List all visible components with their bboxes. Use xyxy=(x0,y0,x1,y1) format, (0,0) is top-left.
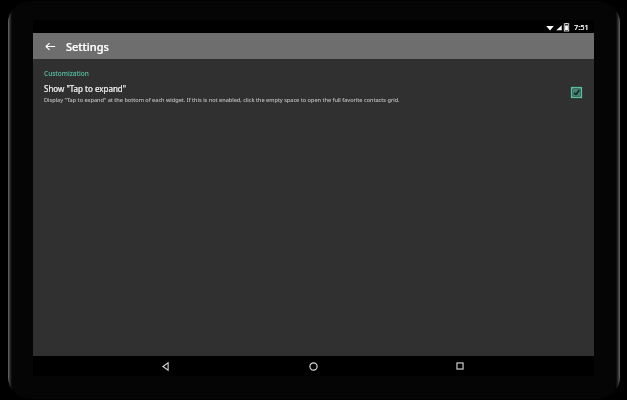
staticText: Settings xyxy=(66,39,109,54)
staticText: 7:51 xyxy=(574,22,589,32)
staticText: Customization xyxy=(44,69,89,78)
button[interactable]: Recent apps xyxy=(447,356,473,376)
staticText: Display "Tap to expand" at the bottom of… xyxy=(44,96,400,104)
button[interactable]: Back xyxy=(41,37,59,55)
button[interactable]: Home xyxy=(300,356,326,376)
staticText: Show "Tap to expand" xyxy=(44,83,127,94)
button[interactable]: Back xyxy=(153,356,179,376)
button[interactable]: Show Tap to expand, enabled xyxy=(568,84,584,100)
button[interactable]: Show "Tap to expand" xyxy=(33,80,594,110)
